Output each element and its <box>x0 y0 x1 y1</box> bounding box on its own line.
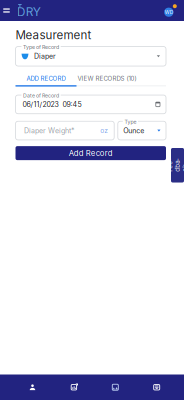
staticText: ADD RECORD <box>26 75 65 82</box>
button[interactable]: Account <box>162 0 184 21</box>
button[interactable]: Type of Record, Diaper <box>15 46 166 66</box>
button[interactable]: Menu <box>0 0 12 21</box>
button[interactable]: Reports <box>53 374 95 400</box>
staticText: Add Record <box>69 148 113 158</box>
staticText: DRY <box>17 5 41 19</box>
staticText: WD <box>165 9 173 15</box>
staticText: Ounce <box>123 126 144 135</box>
staticText: Type <box>124 119 136 125</box>
button[interactable]: Feedback <box>171 148 184 182</box>
staticText: oz <box>100 127 108 135</box>
staticText: Type of Record <box>23 44 59 50</box>
button[interactable]: Date of Record <box>15 95 166 114</box>
button[interactable]: Profile <box>12 374 53 400</box>
staticText: Date of Record <box>23 92 59 99</box>
button[interactable]: Unit, Ounce <box>118 121 166 140</box>
button[interactable]: Gallery <box>95 374 136 400</box>
staticText: Feedback <box>171 154 184 176</box>
staticText: VIEW RECORDS (10) <box>77 75 136 82</box>
staticText: Diaper Weight* <box>24 126 75 135</box>
staticText: 06/11/2023 09:45 <box>22 100 81 109</box>
staticText: Diaper <box>34 52 56 60</box>
button[interactable]: VIEW RECORDS (10) <box>76 74 137 83</box>
button[interactable]: ADD RECORD <box>15 74 76 83</box>
button[interactable]: DRY home <box>12 0 39 21</box>
button[interactable]: Add Record <box>15 146 166 160</box>
staticText: Measurement <box>15 28 91 42</box>
button[interactable]: Records <box>136 374 177 400</box>
